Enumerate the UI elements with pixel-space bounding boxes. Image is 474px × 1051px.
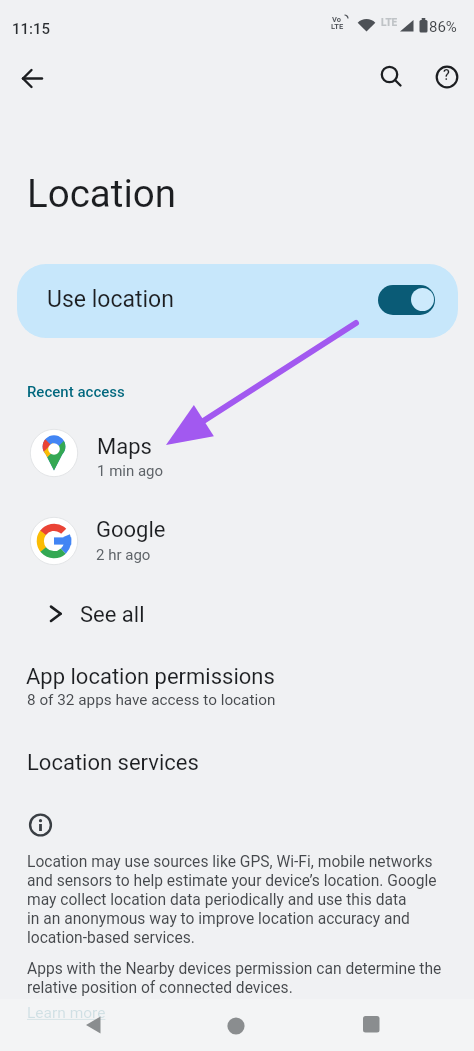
button[interactable] [373,58,405,90]
button[interactable]: ? [431,61,463,93]
staticText: 1 min ago [97,462,164,480]
staticText: 86% [429,18,457,36]
staticText: 2 hr ago [96,546,151,564]
staticText: 11:15 [12,20,51,38]
button[interactable]: Google [0,511,474,570]
staticText: Apps with the Nearby devices permission … [27,960,442,997]
staticText: 8 of 32 apps have access to location [27,691,276,709]
button[interactable]: Maps [0,424,474,482]
staticText: Recent access [27,383,125,401]
staticText: Learn more [27,1004,106,1022]
staticText: Maps [97,434,152,460]
button[interactable] [16,62,48,94]
button[interactable]: Location services [0,736,474,780]
staticText: Vo [332,15,341,24]
button[interactable]: See all [0,596,474,634]
staticText: Location services [27,750,199,776]
staticText: Use location [47,286,174,313]
staticText: ? [443,67,450,83]
staticText: LTE [331,22,344,31]
button[interactable] [357,1010,387,1040]
staticText: App location permissions [26,664,275,690]
button[interactable] [80,1010,110,1040]
staticText: Google [96,517,166,543]
button[interactable]: App location permissions [0,650,474,720]
staticText: LTE [381,17,398,29]
staticText: See all [80,602,145,628]
staticText: Location [27,171,176,216]
button[interactable]: Use location [17,264,458,338]
staticText: Location may use sources like GPS, Wi-Fi… [27,853,437,947]
button[interactable]: Learn more [27,1004,106,1022]
button[interactable] [222,1012,250,1040]
